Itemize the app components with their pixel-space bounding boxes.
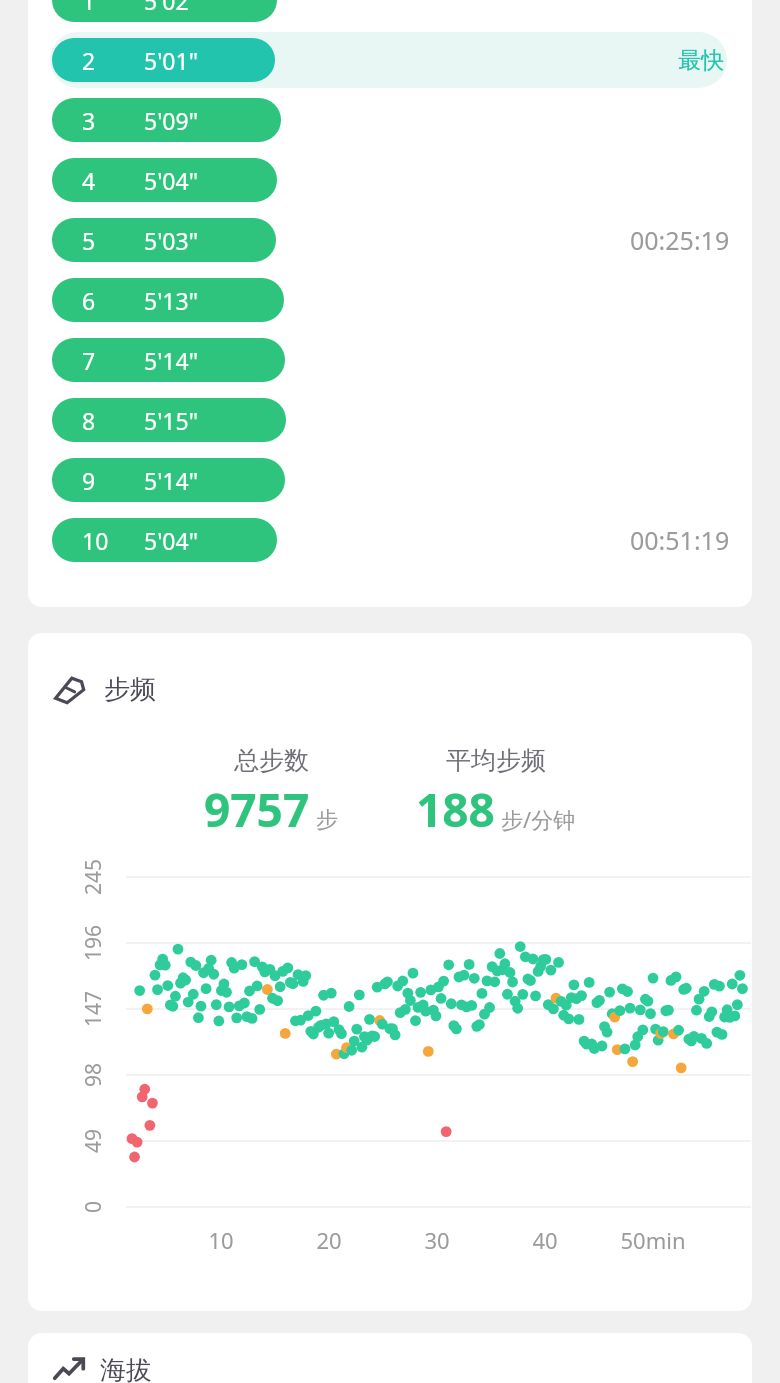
staticText: 10 xyxy=(181,1225,261,1255)
staticText: 步频 xyxy=(104,673,156,706)
staticText: 7 xyxy=(82,345,96,376)
staticText: 5'13" xyxy=(144,285,199,316)
staticText: 海拔 xyxy=(100,1354,152,1383)
button[interactable]: 4 xyxy=(28,158,752,202)
staticText: 5'04" xyxy=(144,525,199,556)
staticText: 3 xyxy=(82,105,96,136)
button[interactable]: 10 xyxy=(28,518,752,562)
staticText: 步/分钟 xyxy=(501,804,576,834)
staticText: 6 xyxy=(82,285,96,316)
staticText: 40 xyxy=(505,1225,585,1255)
staticText: 00:25:19 xyxy=(630,223,730,257)
staticText: 00:51:19 xyxy=(630,523,730,557)
staticText: 9 xyxy=(82,465,96,496)
staticText: 245 xyxy=(79,858,108,895)
staticText: 5'14" xyxy=(144,465,199,496)
staticText: 30 xyxy=(397,1225,477,1255)
staticText: 8 xyxy=(82,405,96,436)
staticText: 50min xyxy=(613,1225,693,1255)
staticText: 5'15" xyxy=(144,405,199,436)
staticText: 最快 xyxy=(678,46,724,75)
button[interactable]: 1 xyxy=(28,0,752,22)
staticText: 188 xyxy=(416,778,495,841)
button[interactable]: Altitude xyxy=(52,1353,152,1383)
other: Altitude xyxy=(52,1353,86,1383)
staticText: 98 xyxy=(79,1062,108,1087)
staticText: 0 xyxy=(79,1200,108,1213)
staticText: 步 xyxy=(316,806,338,834)
staticText: 5 xyxy=(82,225,96,256)
staticText: 147 xyxy=(79,990,108,1027)
other: Cadence xyxy=(52,671,88,707)
button[interactable]: 9 xyxy=(28,458,752,502)
button[interactable]: Cadence xyxy=(52,671,156,707)
button[interactable]: 3 xyxy=(28,98,752,142)
staticText: 5'03" xyxy=(144,225,199,256)
staticText: 5'02" xyxy=(144,0,199,16)
staticText: 10 xyxy=(82,525,109,556)
staticText: 196 xyxy=(79,924,108,961)
staticText: 49 xyxy=(79,1128,108,1153)
staticText: 5'09" xyxy=(144,105,199,136)
staticText: 1 xyxy=(82,0,96,16)
staticText: 5'04" xyxy=(144,165,199,196)
staticText: 4 xyxy=(82,165,96,196)
staticText: 20 xyxy=(289,1225,369,1255)
button[interactable]: 2 xyxy=(28,38,752,82)
button[interactable]: 7 xyxy=(28,338,752,382)
staticText: 平均步频 xyxy=(446,745,546,776)
staticText: 总步数 xyxy=(234,745,309,776)
button[interactable]: 8 xyxy=(28,398,752,442)
button[interactable]: 6 xyxy=(28,278,752,322)
button[interactable]: 5 xyxy=(28,218,752,262)
staticText: 2 xyxy=(82,45,96,76)
staticText: 5'14" xyxy=(144,345,199,376)
staticText: 9757 xyxy=(204,778,310,841)
staticText: 5'01" xyxy=(144,45,199,76)
